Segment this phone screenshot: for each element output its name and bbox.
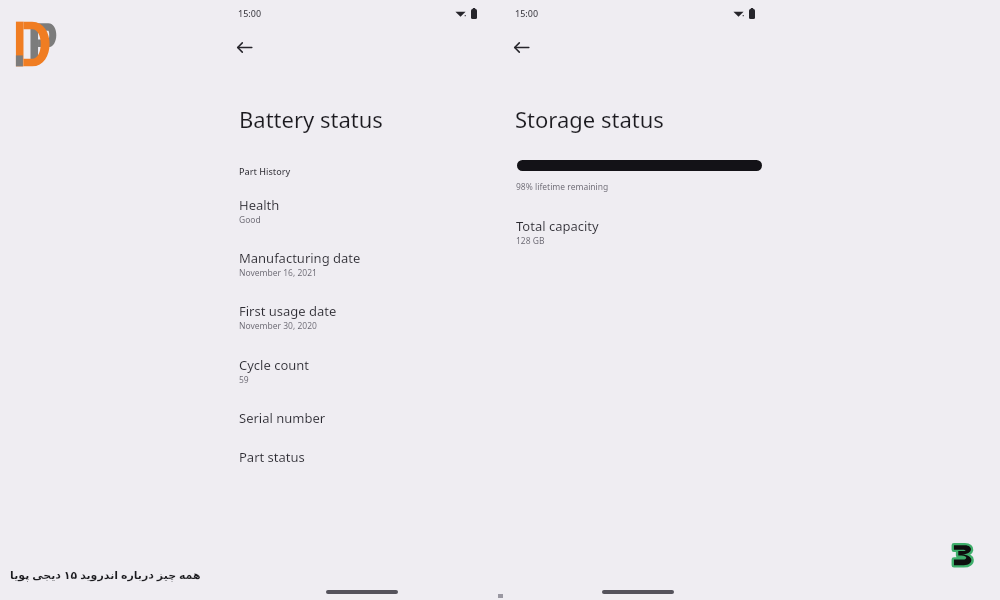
button[interactable]: Total capacity [516, 217, 746, 247]
staticText: 59 [239, 374, 249, 386]
staticText: 15:00 [238, 7, 262, 19]
button[interactable]: Back [507, 33, 535, 61]
button[interactable]: Health [239, 196, 469, 226]
staticText: Storage status [515, 104, 664, 134]
staticText: Part status [239, 448, 305, 466]
staticText: Cycle count [239, 356, 310, 374]
staticText: Serial number [239, 409, 326, 427]
button[interactable] [517, 160, 762, 171]
staticText: Health [239, 196, 280, 214]
staticText: Battery status [239, 104, 383, 134]
staticText: همه چیز درباره اندروید ۱۵ دیجی پویا [10, 567, 201, 582]
staticText: November 16, 2021 [239, 267, 317, 279]
staticText: Part History [239, 165, 291, 177]
staticText: Total capacity [516, 217, 599, 235]
staticText: First usage date [239, 302, 337, 320]
button[interactable]: Serial number [239, 409, 469, 427]
button[interactable]: Manufacturing date [239, 249, 469, 279]
button[interactable]: Cycle count [239, 356, 469, 386]
button[interactable]: First usage date [239, 302, 469, 332]
staticText: 98% lifetime remaining [516, 181, 609, 193]
button[interactable]: Back [230, 33, 258, 61]
staticText: 15:00 [515, 7, 539, 19]
button[interactable]: Part status [239, 448, 469, 466]
staticText: November 30, 2020 [239, 320, 317, 332]
staticText: Manufacturing date [239, 249, 361, 267]
staticText: Good [239, 214, 261, 226]
staticText: 128 GB [516, 235, 545, 247]
